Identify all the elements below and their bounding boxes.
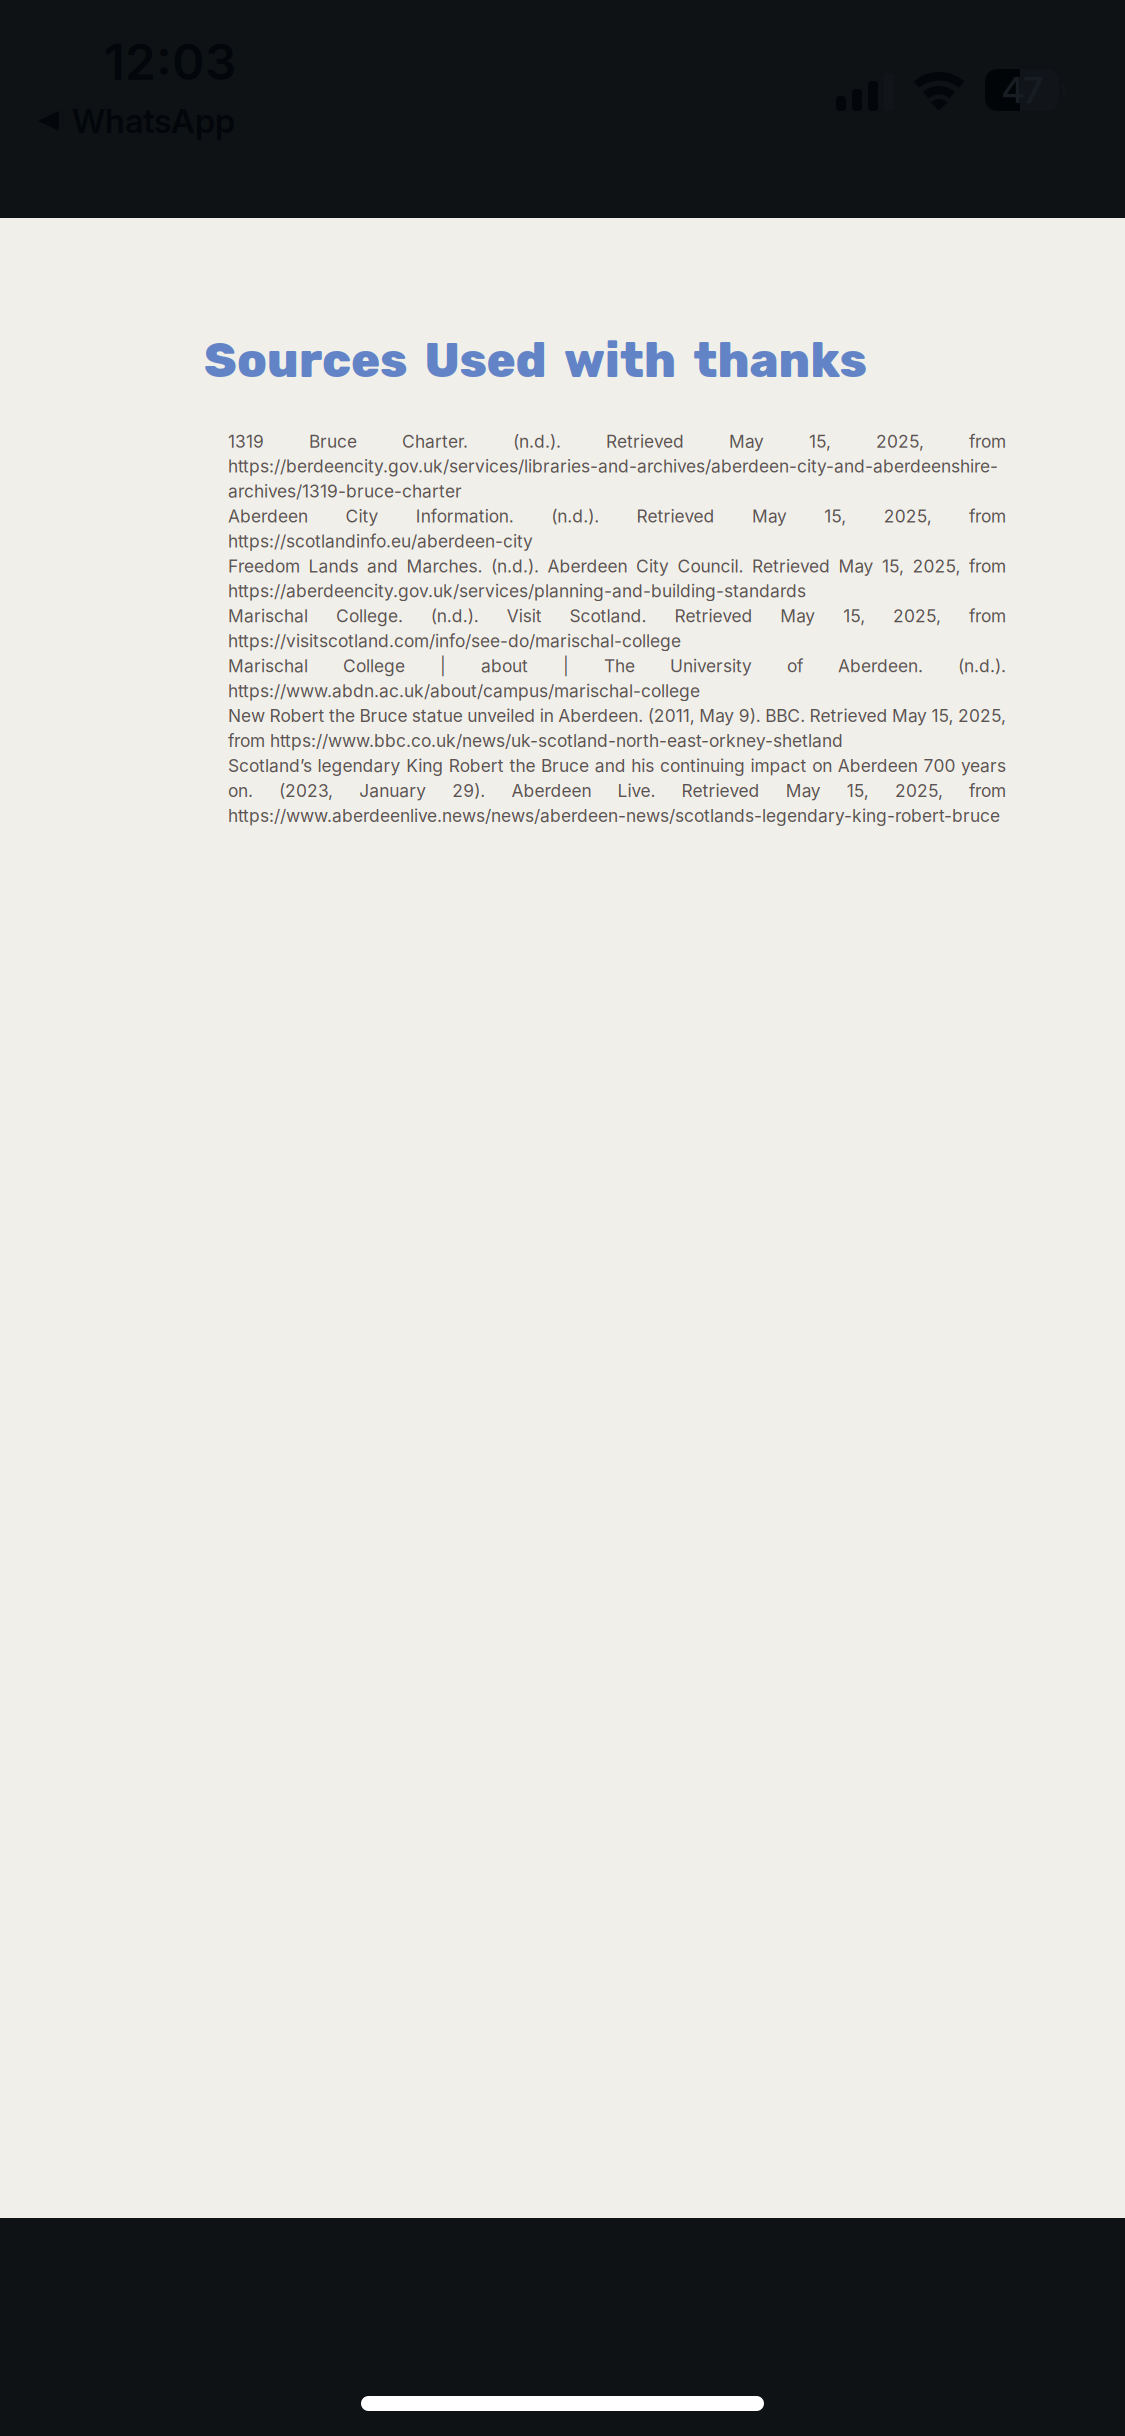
staticText: Sources <box>204 332 407 389</box>
staticText: Visit <box>507 605 542 626</box>
staticText: Bruce <box>309 431 357 452</box>
staticText: (2023, <box>279 780 333 801</box>
staticText: thanks <box>693 332 866 389</box>
staticText: impact <box>750 755 806 776</box>
staticText: from <box>969 556 1006 577</box>
staticText: King <box>406 755 443 776</box>
staticText: | <box>440 655 446 676</box>
staticText: 29). <box>452 780 485 801</box>
staticText: with <box>564 332 676 389</box>
staticText: continuing <box>660 755 745 776</box>
staticText: of <box>787 655 803 676</box>
staticText: BBC. <box>765 705 805 726</box>
staticText: College. <box>336 605 403 626</box>
staticText: Live. <box>617 780 655 801</box>
staticText: Scotland’s <box>228 755 312 776</box>
staticText: May <box>780 605 815 626</box>
staticText: (n.d.). <box>958 655 1006 676</box>
staticText: (n.d.). <box>491 556 539 577</box>
staticText: (n.d.). <box>551 506 599 527</box>
staticText: 700 <box>923 755 955 776</box>
staticText: https://berdeencity.gov.uk/services/libr… <box>228 456 998 477</box>
staticText: Aberdeen. <box>558 705 643 726</box>
staticText: Aberdeen. <box>838 655 923 676</box>
staticText: Council. <box>677 556 743 577</box>
staticText: 15, <box>843 605 865 626</box>
staticText: Marches. <box>406 556 482 577</box>
staticText: 2025, <box>895 780 943 801</box>
staticText: and <box>595 755 626 776</box>
staticText: Retrieved <box>606 431 684 452</box>
staticText: Robert <box>269 705 324 726</box>
staticText: Retrieved <box>752 556 830 577</box>
staticText: (n.d.). <box>431 605 479 626</box>
staticText: archives/1319-bruce-charter <box>228 481 462 502</box>
staticText: 2025, <box>876 431 924 452</box>
staticText: May <box>838 556 873 577</box>
button[interactable]: Back to WhatsApp <box>38 92 235 141</box>
staticText: Charter. <box>402 431 468 452</box>
staticText: 2025, <box>958 705 1006 726</box>
staticText: Freedom <box>228 556 300 577</box>
staticText: (2011, <box>648 705 695 726</box>
staticText: https://scotlandinfo.eu/aberdeen-city <box>228 531 533 552</box>
staticText: unveiled <box>467 705 535 726</box>
staticText: January <box>359 780 426 801</box>
staticText: College <box>343 655 405 676</box>
staticText: and <box>367 556 398 577</box>
staticText: May <box>752 506 787 527</box>
staticText: 2025, <box>912 556 960 577</box>
staticText: from <box>969 431 1006 452</box>
staticText: City <box>345 506 378 527</box>
staticText: 9). <box>739 705 761 726</box>
staticText: legendary <box>318 755 401 776</box>
staticText: Bruce <box>541 755 589 776</box>
staticText: from <box>969 780 1006 801</box>
staticText: 15, <box>809 431 831 452</box>
staticText: Aberdeen <box>228 506 308 527</box>
staticText: May <box>786 780 821 801</box>
staticText: Aberdeen <box>511 780 591 801</box>
staticText: in <box>540 705 554 726</box>
staticText: Aberdeen <box>547 556 627 577</box>
staticText: (n.d.). <box>513 431 561 452</box>
staticText: May <box>729 431 764 452</box>
staticText: New <box>228 705 265 726</box>
staticText: the <box>329 705 355 726</box>
staticText: Retrieved <box>674 605 752 626</box>
staticText: from https://www.bbc.co.uk/news/uk-scotl… <box>228 730 843 751</box>
staticText: The <box>604 655 635 676</box>
staticText: May <box>699 705 734 726</box>
staticText: 1319 <box>228 431 264 452</box>
staticText: Retrieved <box>682 780 760 801</box>
staticText: 15, <box>882 556 904 577</box>
staticText: Retrieved <box>810 705 888 726</box>
staticText: Marischal <box>228 605 308 626</box>
staticText: Aberdeen <box>838 755 918 776</box>
staticText: Robert <box>449 755 504 776</box>
staticText: https://aberdeencity.gov.uk/services/pla… <box>228 581 806 602</box>
staticText: Retrieved <box>636 506 714 527</box>
staticText: https://www.abdn.ac.uk/about/campus/mari… <box>228 680 700 701</box>
staticText: years <box>961 755 1006 776</box>
staticText: on <box>812 755 832 776</box>
staticText: https://visitscotland.com/info/see-do/ma… <box>228 630 681 651</box>
staticText: statue <box>412 705 463 726</box>
staticText: Bruce <box>359 705 407 726</box>
staticText: 47 <box>1001 68 1042 112</box>
staticText: from <box>969 506 1006 527</box>
staticText: 15, <box>931 705 953 726</box>
staticText: 15, <box>824 506 846 527</box>
staticText: University <box>670 655 752 676</box>
staticText: about <box>481 655 528 676</box>
staticText: Lands <box>308 556 358 577</box>
staticText: the <box>509 755 535 776</box>
staticText: his <box>631 755 654 776</box>
staticText: Information. <box>416 506 514 527</box>
staticText: City <box>636 556 669 577</box>
staticText: on. <box>228 780 253 801</box>
staticText: WhatsApp <box>72 101 235 141</box>
staticText: from <box>969 605 1006 626</box>
staticText: 2025, <box>884 506 932 527</box>
staticText: | <box>563 655 569 676</box>
